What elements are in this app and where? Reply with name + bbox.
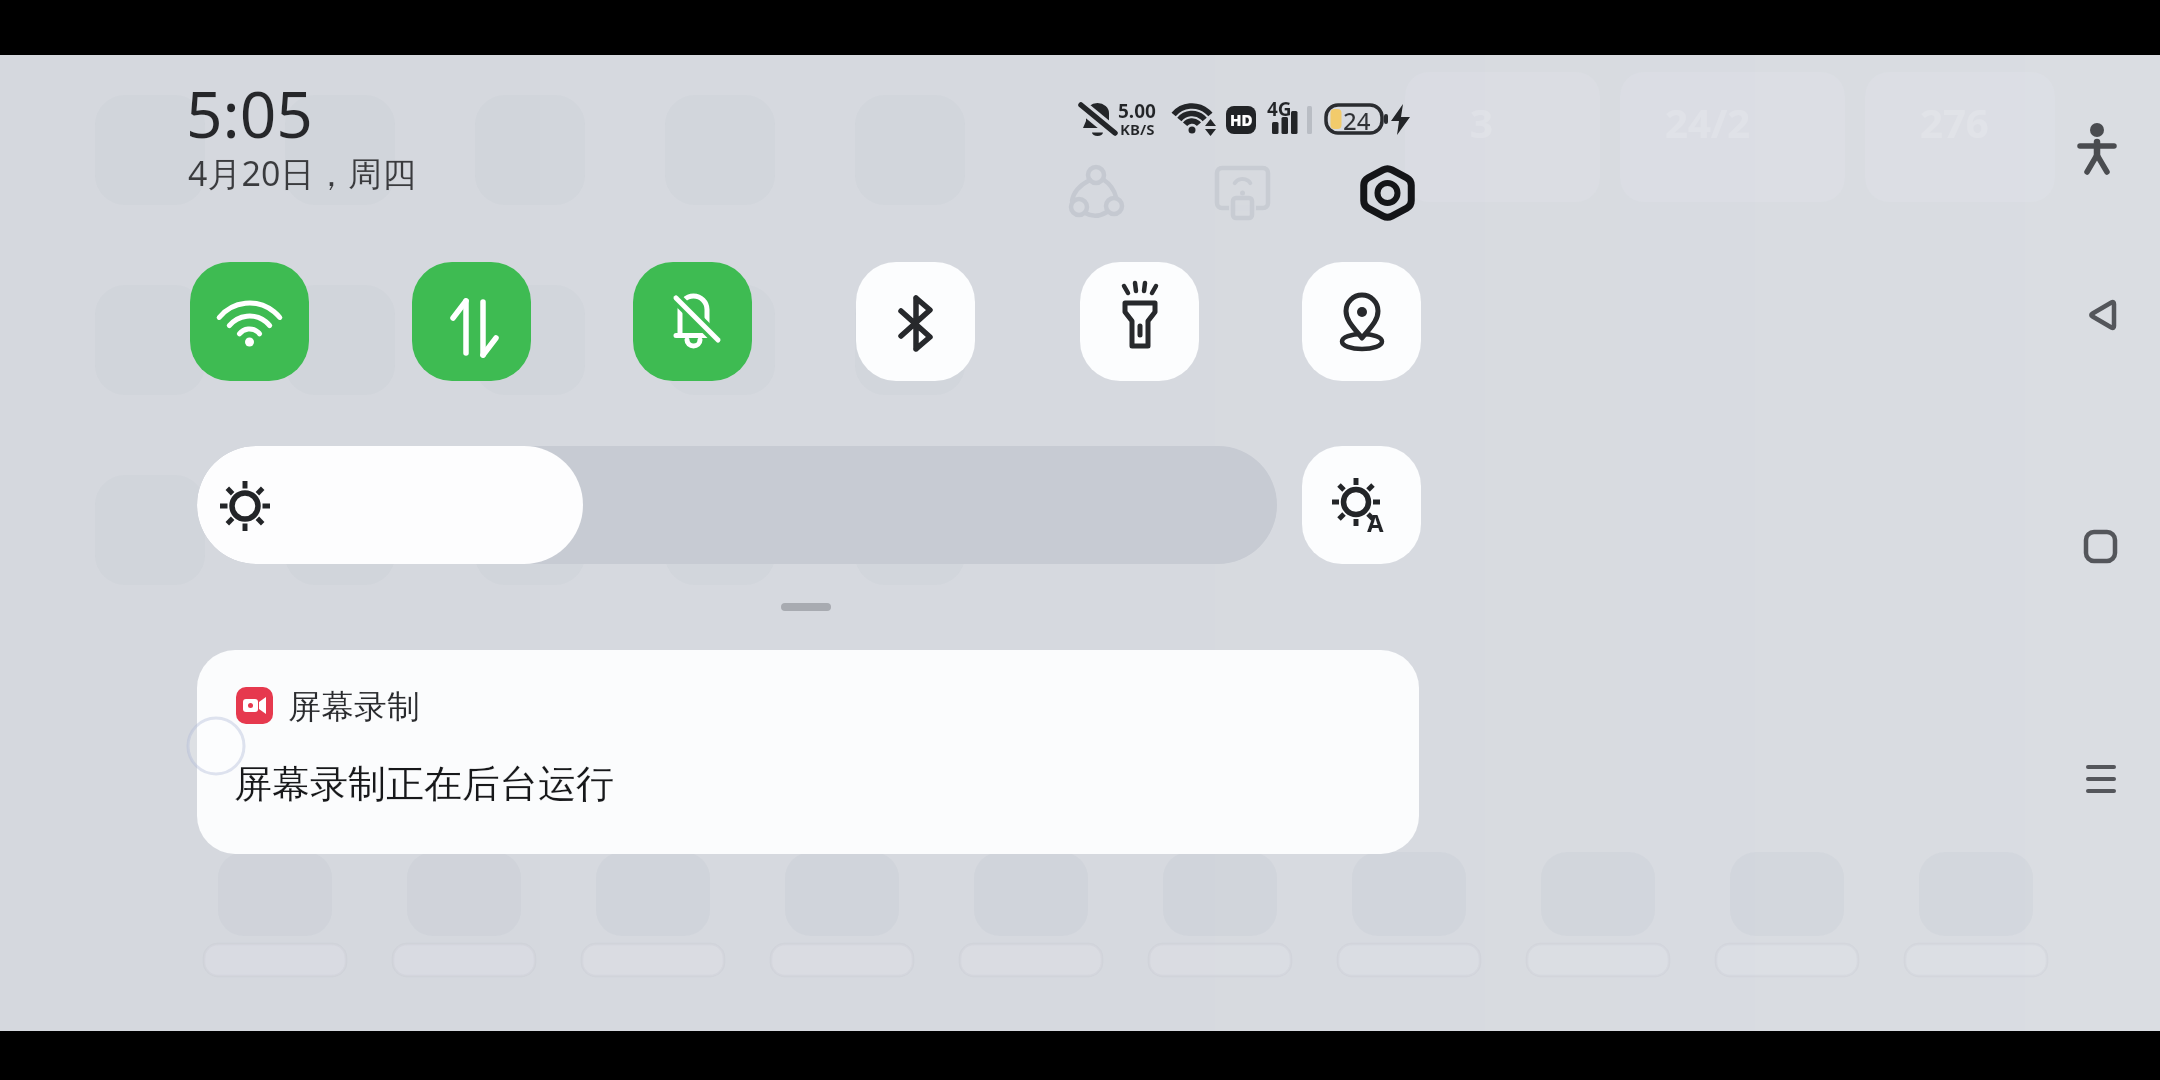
button[interactable] — [1302, 262, 1421, 381]
button[interactable] — [412, 262, 531, 381]
button[interactable]: 屏幕录制 — [197, 650, 1419, 854]
button[interactable] — [1080, 262, 1199, 381]
button[interactable] — [2070, 115, 2126, 177]
button[interactable] — [2078, 290, 2126, 340]
staticText: 24 — [1343, 104, 1371, 137]
button[interactable] — [2076, 522, 2124, 572]
staticText: 4月20日，周四 — [188, 150, 417, 196]
staticText: A — [1367, 506, 1384, 539]
button[interactable] — [633, 262, 752, 381]
staticText: KB/S — [1120, 119, 1155, 135]
button[interactable]: A — [1302, 446, 1421, 564]
staticText: 屏幕录制 — [288, 686, 420, 728]
staticText: 5.00 — [1118, 98, 1156, 120]
button[interactable] — [1340, 160, 1410, 228]
staticText: 屏幕录制正在后台运行 — [234, 760, 614, 808]
button[interactable] — [197, 446, 1277, 564]
button[interactable] — [2078, 755, 2126, 803]
staticText: 4G — [1267, 96, 1292, 122]
button[interactable] — [856, 262, 975, 381]
staticText: HD — [1230, 110, 1253, 130]
button[interactable] — [190, 262, 309, 381]
staticText: 5:05 — [186, 70, 313, 157]
